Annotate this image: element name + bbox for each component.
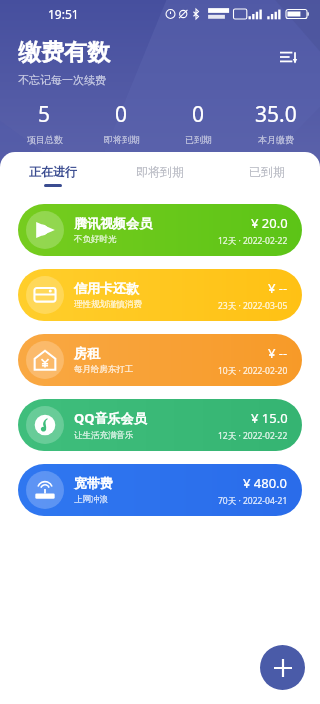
staticText: ¥ 480.0	[243, 474, 288, 492]
staticText: 12天 · 2022-02-22	[218, 430, 288, 442]
staticText: 已到期	[249, 164, 285, 179]
staticText: 12天 · 2022-02-22	[218, 235, 288, 247]
staticText: 每月给房东打工	[74, 364, 134, 375]
button[interactable]: 已到期	[213, 152, 320, 198]
button[interactable]: 即将到期	[106, 152, 213, 198]
staticText: 宽带费	[74, 475, 113, 491]
staticText: 70天 · 2022-04-21	[218, 495, 288, 507]
button[interactable]: 正在进行	[0, 152, 106, 198]
staticText: ¥ 15.0	[251, 409, 288, 427]
staticText: 腾讯视频会员	[74, 215, 152, 231]
staticText: 即将到期	[136, 164, 184, 179]
staticText: 0	[192, 100, 205, 129]
staticText: 35.0	[255, 100, 297, 129]
staticText: 已到期	[185, 134, 212, 145]
staticText: QQ音乐会员	[74, 409, 147, 427]
staticText: 不负好时光	[74, 234, 117, 245]
button[interactable]: QQ音乐会员	[18, 399, 302, 451]
staticText: 上网冲浪	[74, 494, 108, 505]
staticText: 正在进行	[29, 164, 77, 179]
button[interactable]: 信用卡还款	[18, 269, 302, 321]
staticText: 0	[115, 100, 128, 129]
staticText: 即将到期	[104, 134, 140, 145]
staticText: ¥ --	[268, 344, 288, 362]
staticText: 理性规划谨慎消费	[74, 299, 142, 310]
button[interactable]: 宽带费	[18, 464, 302, 516]
button[interactable]: 腾讯视频会员	[18, 204, 302, 256]
staticText: 19:51	[48, 6, 79, 22]
staticText: 房租	[74, 345, 100, 361]
staticText: 本月缴费	[258, 134, 294, 145]
staticText: 10天 · 2022-02-20	[218, 365, 288, 377]
staticText: 23天 · 2022-03-05	[218, 300, 288, 312]
button[interactable]: 房租	[18, 334, 302, 386]
staticText: 5	[38, 100, 51, 129]
button[interactable]: Add	[260, 645, 305, 690]
staticText: 缴费有数	[18, 38, 110, 67]
staticText: 让生活充满音乐	[74, 430, 134, 441]
staticText: ¥ --	[268, 279, 288, 297]
staticText: 不忘记每一次续费	[18, 73, 106, 87]
staticText: 项目总数	[27, 134, 63, 145]
staticText: ¥ 20.0	[251, 214, 288, 232]
button[interactable]: Sort	[272, 40, 306, 74]
staticText: 信用卡还款	[74, 280, 139, 296]
